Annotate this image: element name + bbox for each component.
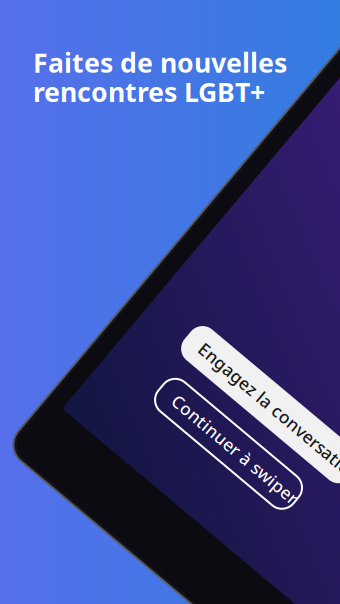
staticText: Continuer à swiper: [235, 361, 340, 384]
button[interactable]: Engagez la conversation: [205, 296, 340, 336]
button[interactable]: Continuer à swiper: [218, 354, 340, 392]
staticText: Faites de nouvelles: [33, 45, 287, 80]
staticText: rencontres LGBT+: [33, 74, 265, 109]
staticText: Engagez la conversation: [222, 304, 340, 327]
